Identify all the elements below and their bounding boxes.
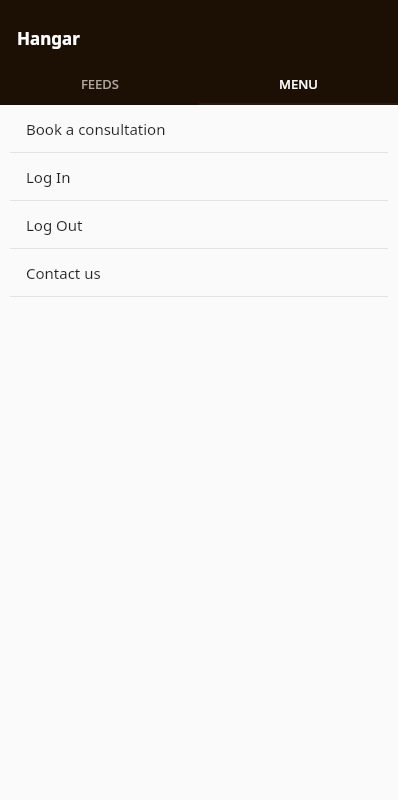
button[interactable]: Log Out [0, 201, 398, 248]
staticText: Book a consultation [26, 119, 166, 139]
button[interactable]: Contact us [0, 249, 398, 296]
staticText: Hangar [17, 27, 80, 50]
button[interactable]: Book a consultation [0, 105, 398, 152]
button[interactable]: FEEDS [0, 63, 199, 105]
staticText: Log Out [26, 215, 83, 235]
staticText: Contact us [26, 263, 101, 283]
staticText: MENU [279, 75, 318, 93]
staticText: Log In [26, 167, 71, 187]
staticText: FEEDS [81, 75, 119, 93]
button[interactable]: MENU [199, 63, 398, 105]
button[interactable]: Log In [0, 153, 398, 200]
